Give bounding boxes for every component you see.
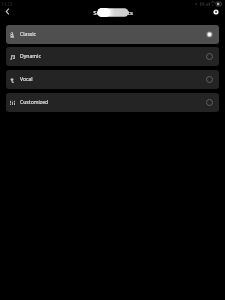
staticText: Vocal <box>20 76 33 83</box>
staticText: Classic <box>20 31 37 38</box>
button[interactable]: Customized <box>6 93 219 112</box>
button[interactable]: Vocal <box>6 70 219 89</box>
staticText: 14:23 <box>1 1 13 7</box>
staticText: Customized <box>20 99 49 106</box>
staticText: Sound effects <box>93 8 133 16</box>
button[interactable]: Dynamic <box>6 47 219 66</box>
staticText: Dynamic <box>20 53 41 60</box>
button[interactable]: Classic <box>6 25 219 44</box>
button[interactable]: Back <box>0 4 15 19</box>
button[interactable]: Help <box>210 6 222 18</box>
